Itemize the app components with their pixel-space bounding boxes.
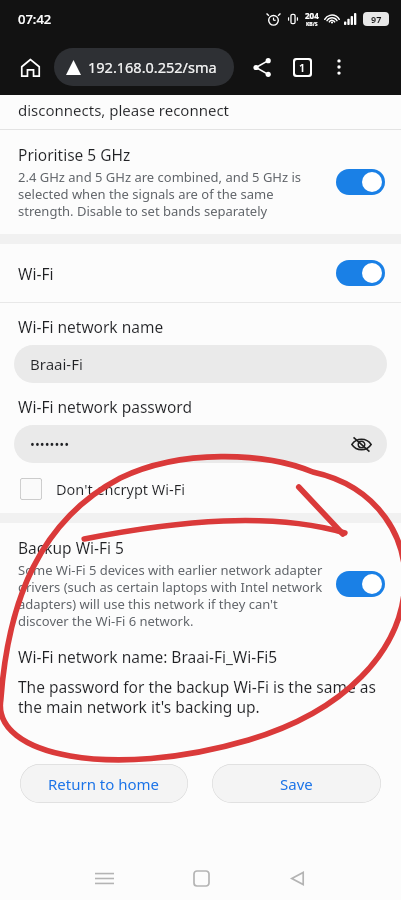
staticText: 1	[299, 60, 306, 75]
staticText: Some Wi-Fi 5 devices with earlier networ…	[18, 561, 324, 630]
staticText: Backup Wi-Fi 5	[18, 537, 124, 558]
staticText: 204	[305, 10, 319, 21]
button[interactable]: Share	[242, 47, 282, 87]
staticText: Wi-Fi network password	[18, 396, 192, 417]
button[interactable]: Toggle	[336, 260, 385, 286]
staticText: KB/S	[306, 21, 318, 28]
staticText: ••••••••	[30, 435, 70, 453]
button[interactable]: Return to home	[20, 764, 188, 803]
button[interactable]: ••••••••	[14, 425, 387, 463]
staticText: Wi-Fi	[18, 263, 336, 284]
staticText: Return to home	[48, 774, 160, 794]
staticText: Wi-Fi network name	[18, 316, 164, 337]
button[interactable]: Prioritise 5 GHz	[0, 130, 401, 234]
staticText: The password for the backup Wi-Fi is the…	[18, 676, 387, 718]
button[interactable]: Wi-Fi	[0, 244, 401, 302]
button[interactable]: Tabs	[282, 47, 322, 87]
button[interactable]: Home	[153, 856, 249, 900]
button[interactable]: 192.168.0.252/sma	[54, 48, 234, 86]
staticText: Prioritise 5 GHz	[18, 144, 131, 165]
staticText: 07:42	[18, 10, 52, 28]
button[interactable]: Braai-Fi	[14, 345, 387, 383]
button[interactable]: Don't encrypt Wi-Fi	[0, 474, 401, 504]
button[interactable]: Backup Wi-Fi 5	[0, 523, 401, 630]
button[interactable]: Save	[212, 764, 381, 803]
button[interactable]: Toggle	[336, 571, 385, 597]
staticText: 2.4 GHz and 5 GHz are combined, and 5 GH…	[18, 168, 324, 220]
button[interactable]: Home	[10, 47, 50, 87]
staticText: 192.168.0.252/sma	[88, 57, 217, 77]
button[interactable]: More options	[322, 50, 356, 84]
button[interactable]: Recent apps	[56, 856, 153, 900]
staticText: Braai-Fi	[30, 354, 83, 374]
button[interactable]: Back	[249, 856, 345, 900]
staticText: Don't encrypt Wi-Fi	[56, 479, 186, 499]
button[interactable]: Toggle	[336, 169, 385, 195]
button[interactable]: Show password	[345, 428, 377, 460]
staticText: 97	[371, 13, 382, 25]
staticText: Wi-Fi network name: Braai-Fi_Wi-Fi5	[18, 646, 278, 667]
staticText: Save	[280, 774, 313, 794]
staticText: disconnects, please reconnect	[18, 100, 230, 120]
